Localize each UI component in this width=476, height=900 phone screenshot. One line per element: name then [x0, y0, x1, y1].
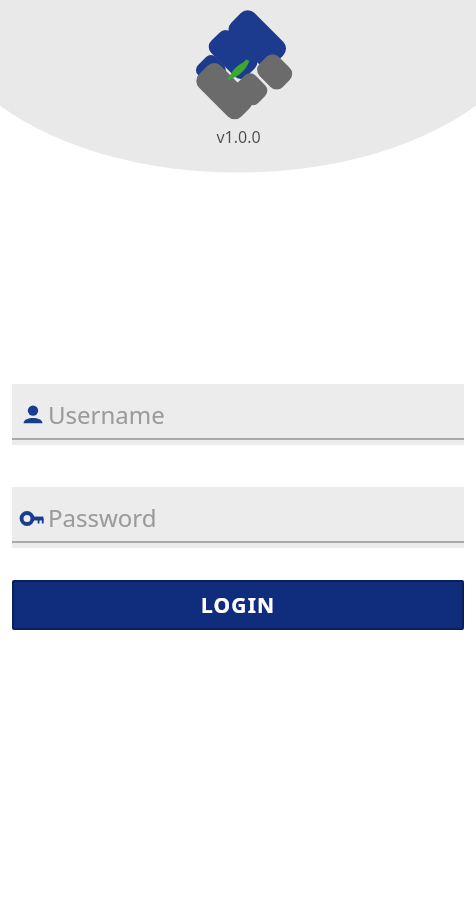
staticText: v1.0.0 [216, 126, 261, 148]
button[interactable]: Username [12, 384, 464, 445]
staticText: LOGIN [201, 591, 276, 620]
button[interactable]: LOGIN [14, 582, 462, 628]
staticText: Password [48, 501, 157, 534]
button[interactable]: Password [12, 487, 464, 548]
staticText: Username [48, 398, 165, 431]
